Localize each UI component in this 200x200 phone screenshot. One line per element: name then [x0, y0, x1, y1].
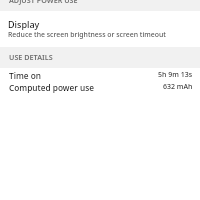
staticText: ADJUST POWER USE	[9, 0, 78, 5]
staticText: Computed power use	[9, 82, 94, 93]
staticText: USE DETAILS	[9, 52, 53, 62]
staticText: Reduce the screen brightness or screen t…	[8, 30, 166, 39]
button[interactable]: Computed power use	[0, 81, 200, 93]
staticText: Display	[8, 18, 40, 30]
staticText: 632 mAh	[163, 82, 193, 92]
staticText: Time on	[9, 70, 41, 81]
button[interactable]: Time on	[0, 69, 200, 81]
button[interactable]: Display	[0, 11, 200, 47]
staticText: 5h 9m 13s	[158, 70, 193, 80]
